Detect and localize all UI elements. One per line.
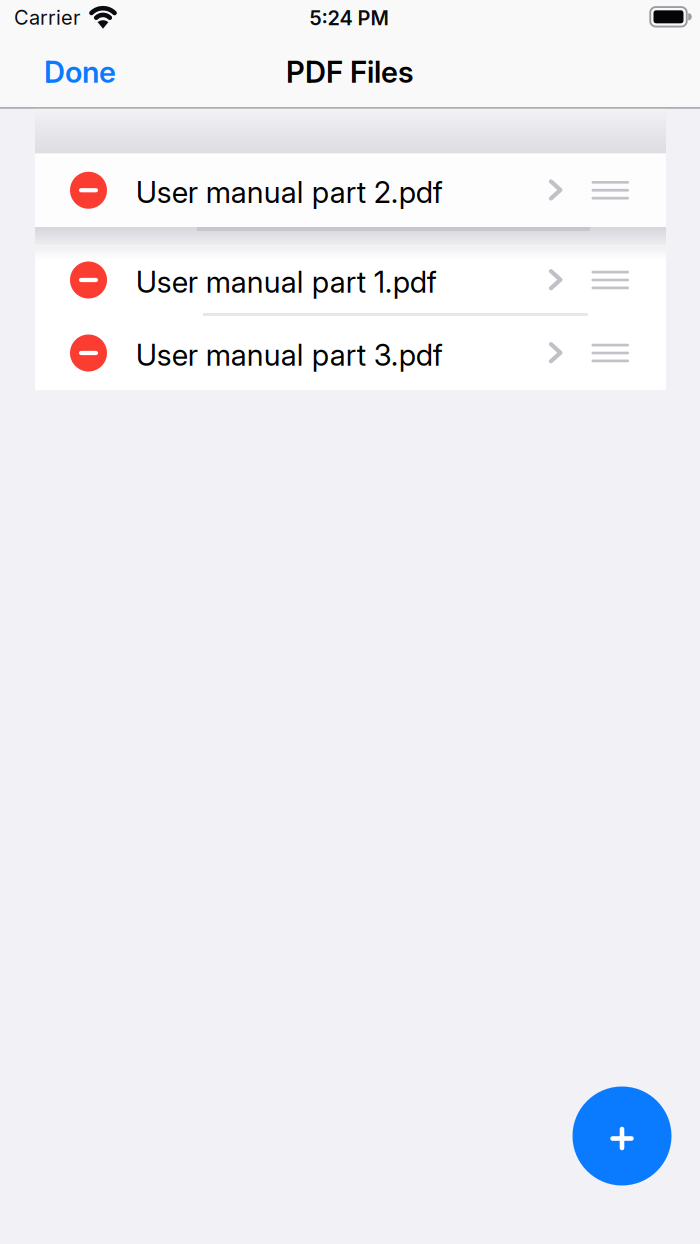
button[interactable]: Delete [70, 172, 107, 209]
staticText: 5:24 PM [309, 6, 388, 30]
staticText: Carrier [14, 6, 80, 29]
staticText: User manual part 3.pdf [136, 338, 443, 372]
staticText: User manual part 2.pdf [136, 175, 443, 210]
button[interactable]: Delete [70, 261, 107, 298]
button[interactable]: User manual part 2.pdf [35, 153, 666, 227]
button[interactable]: Done [44, 55, 116, 89]
button[interactable]: User manual part 1.pdf [35, 245, 666, 314]
button[interactable]: User manual part 3.pdf [35, 315, 666, 391]
button[interactable]: Add PDF [572, 1086, 671, 1185]
staticText: Done [44, 55, 116, 89]
button[interactable]: Delete [70, 334, 107, 371]
staticText: User manual part 1.pdf [136, 265, 437, 299]
staticText: PDF Files [286, 55, 414, 89]
